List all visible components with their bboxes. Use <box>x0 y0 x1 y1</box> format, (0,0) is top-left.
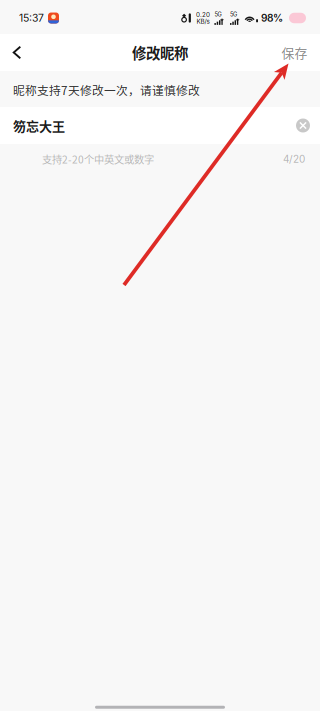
staticText: 昵称支持7天修改一次，请谨慎修改 <box>13 81 200 98</box>
staticText: 4/20 <box>283 153 305 165</box>
button[interactable]: 保存 <box>269 34 320 71</box>
staticText: 0.20 <box>196 11 210 18</box>
staticText: KB/s <box>196 18 209 25</box>
staticText: 修改昵称 <box>132 42 188 63</box>
staticText: 98% <box>261 12 283 24</box>
button[interactable]: 返回 <box>0 34 34 71</box>
staticText: 支持2-20个中英文或数字 <box>42 152 154 166</box>
staticText: 5G <box>230 11 237 18</box>
button[interactable]: 清除 <box>287 107 319 144</box>
staticText: 保存 <box>281 43 307 62</box>
staticText: 5G <box>214 11 221 18</box>
staticText: 15:37 <box>19 12 44 24</box>
staticText: 笏忘大王 <box>13 116 65 135</box>
